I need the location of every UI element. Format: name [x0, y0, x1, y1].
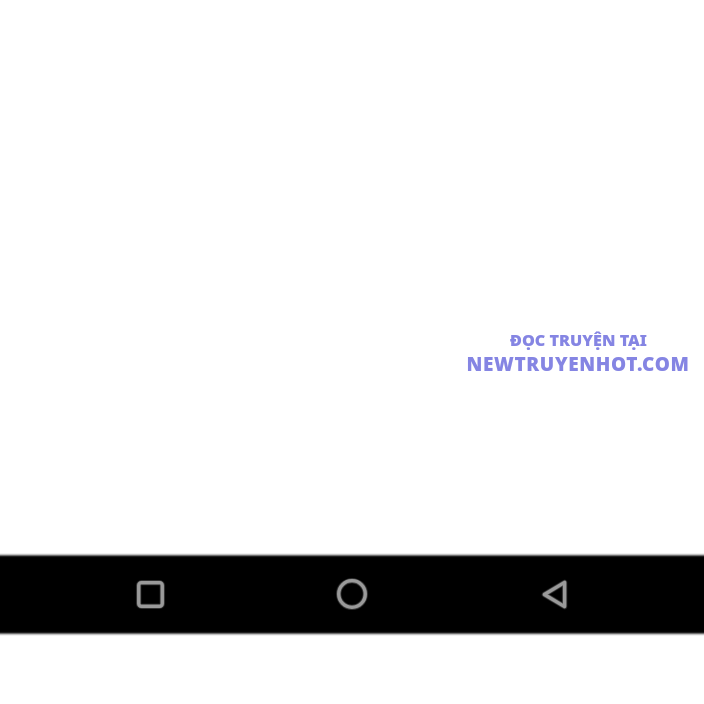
- button[interactable]: Home: [301, 555, 403, 633]
- staticText: NEWTRUYENHOT.COM: [466, 351, 690, 375]
- staticText: ĐỌC TRUYỆN TẠI: [510, 329, 647, 351]
- button[interactable]: Recent apps: [99, 555, 201, 633]
- button[interactable]: Back: [503, 555, 605, 633]
